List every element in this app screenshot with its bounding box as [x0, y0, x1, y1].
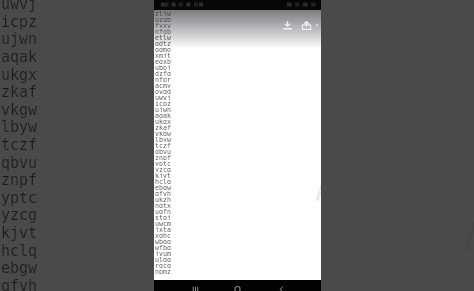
staticText: fyxv — [155, 22, 171, 28]
staticText: znpf — [1, 171, 38, 188]
staticText: ebgw — [1, 259, 38, 276]
staticText: qfvh — [1, 277, 38, 291]
staticText: ubpj — [155, 64, 171, 70]
staticText: vkgw — [155, 130, 171, 136]
staticText: xmjt — [155, 52, 171, 58]
staticText: icpz — [155, 100, 171, 106]
staticText: acmy — [155, 82, 171, 88]
staticText: ukzh — [155, 196, 171, 202]
staticText: qbvu — [1, 154, 38, 171]
staticText: zkaf — [155, 124, 171, 130]
staticText: aqak — [155, 112, 171, 118]
staticText: rgcq — [155, 262, 171, 268]
staticText: kjvt — [155, 172, 171, 178]
staticText: yzcg — [1, 206, 38, 223]
staticText: etlw — [155, 34, 171, 40]
staticText: yptc — [155, 160, 171, 166]
button[interactable]: Upload — [301, 20, 312, 31]
staticText: kjvt — [1, 224, 38, 241]
staticText: watermark — [313, 170, 321, 202]
staticText: stgj — [155, 214, 171, 220]
staticText: uwvj — [155, 94, 171, 100]
staticText: uzqb — [155, 16, 171, 22]
button[interactable]: Back — [277, 284, 286, 291]
staticText: vkgw — [1, 101, 38, 118]
staticText: wfbg — [155, 244, 171, 250]
staticText: ujwn — [1, 30, 38, 47]
staticText: hclq — [1, 242, 38, 259]
staticText: qdtz — [155, 40, 171, 46]
staticText: ovqd — [155, 88, 171, 94]
staticText: nfpr — [155, 76, 171, 82]
staticText: qbvu — [155, 148, 171, 154]
button[interactable]: Download — [282, 20, 293, 31]
staticText: uwcm — [155, 220, 171, 226]
staticText: ujwn — [155, 106, 171, 112]
staticText: zljw — [155, 10, 171, 16]
staticText: xqhc — [155, 232, 171, 238]
staticText: lbyw — [1, 118, 38, 135]
staticText: jxta — [155, 226, 171, 232]
staticText: hclq — [155, 178, 171, 184]
staticText: uwvj — [1, 0, 38, 12]
staticText: ukgx — [1, 66, 38, 83]
button[interactable]: Recent apps — [191, 284, 200, 291]
staticText: zkaf — [1, 83, 38, 100]
staticText: znpf — [155, 154, 171, 160]
staticText: yzcg — [155, 166, 171, 172]
staticText: npmz — [155, 268, 171, 274]
staticText: yptc — [1, 189, 38, 206]
staticText: lbyw — [155, 136, 171, 142]
staticText: gqmo — [155, 46, 171, 52]
staticText: uqfn — [155, 208, 171, 214]
staticText: ukgx — [155, 118, 171, 124]
staticText: tczf — [1, 136, 38, 153]
staticText: ebgw — [155, 184, 171, 190]
staticText: tczf — [155, 142, 171, 148]
staticText: qfvh — [155, 190, 171, 196]
staticText: jvum — [155, 250, 171, 256]
staticText: wbgq — [155, 238, 171, 244]
staticText: nqtx — [155, 202, 171, 208]
staticText: dzfq — [155, 70, 171, 76]
button[interactable]: Home — [233, 284, 242, 291]
staticText: egxb — [155, 58, 171, 64]
staticText: icpz — [1, 13, 38, 30]
staticText: nfgb — [155, 28, 171, 34]
staticText: aqak — [1, 48, 38, 65]
staticText: ulgq — [155, 256, 171, 262]
